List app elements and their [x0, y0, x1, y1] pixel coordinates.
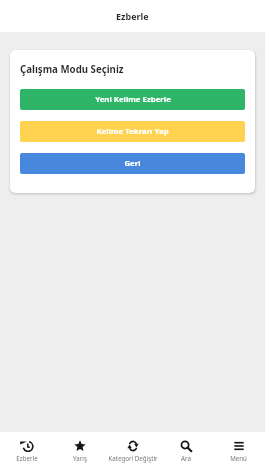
button[interactable]: Yeni Kelime Ezberle: [20, 89, 245, 110]
button[interactable]: Menü: [212, 432, 265, 471]
staticText: Kelime Tekrarı Yap: [96, 126, 169, 137]
staticText: Ara: [181, 454, 191, 462]
staticText: Menü: [230, 454, 247, 462]
staticText: Çalışma Modu Seçiniz: [20, 63, 124, 76]
button[interactable]: Kategori Değiştir: [106, 432, 159, 471]
staticText: Yeni Kelime Ezberle: [95, 94, 171, 105]
staticText: Ezberle: [16, 454, 38, 462]
button[interactable]: Ara: [159, 432, 212, 471]
staticText: Kategori Değiştir: [108, 454, 158, 462]
staticText: Yarış: [73, 454, 87, 462]
button[interactable]: Kelime Tekrarı Yap: [20, 121, 245, 142]
button[interactable]: Yarış: [53, 432, 106, 471]
staticText: Geri: [124, 158, 141, 169]
button[interactable]: Geri: [20, 153, 245, 174]
staticText: Ezberle: [116, 10, 149, 22]
button[interactable]: Ezberle: [0, 432, 53, 471]
